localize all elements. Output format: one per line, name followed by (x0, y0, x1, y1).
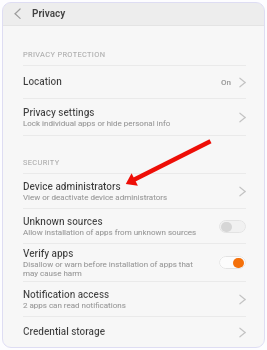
button[interactable]: Back (3, 3, 32, 25)
staticText: Privacy (32, 8, 66, 20)
button[interactable]: Unknown sources (219, 220, 246, 233)
staticText: View or deactivate device administrators (23, 193, 168, 202)
button[interactable]: Verify apps (219, 256, 246, 269)
staticText: Verify apps (23, 248, 74, 260)
staticText: On (221, 78, 231, 87)
staticText: Device administrators (23, 181, 121, 193)
staticText: SECURITY (23, 158, 60, 167)
staticText: 2 apps can read notifications (23, 301, 126, 310)
staticText: Notification access (23, 289, 110, 301)
button[interactable]: Notification access (3, 282, 264, 316)
staticText: Disallow or warn before installation of … (23, 260, 201, 278)
staticText: Allow installation of apps from unknown … (23, 228, 197, 237)
staticText: Credential storage (23, 326, 105, 338)
button[interactable]: Unknown sources (3, 209, 264, 243)
staticText: Lock individual apps or hide personal in… (23, 119, 171, 128)
button[interactable]: Credential storage (3, 317, 264, 347)
staticText: Unknown sources (23, 216, 103, 228)
button[interactable]: Verify apps (3, 244, 264, 281)
staticText: Privacy settings (23, 107, 95, 119)
button[interactable]: Location (3, 66, 264, 98)
staticText: PRIVACY PROTECTION (23, 50, 106, 59)
staticText: Location (23, 76, 62, 88)
button[interactable]: Privacy settings (3, 99, 264, 135)
button[interactable]: Device administrators (3, 174, 264, 208)
